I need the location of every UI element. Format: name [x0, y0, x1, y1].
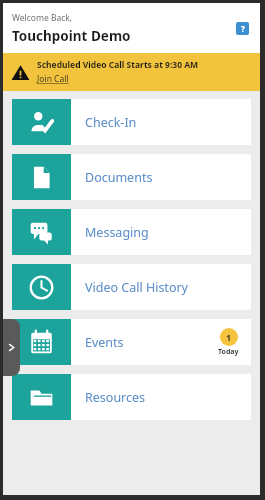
staticText: Join Call: [37, 73, 69, 85]
button[interactable]: Help: [236, 22, 249, 35]
staticText: 1: [226, 331, 232, 343]
button[interactable]: Open side menu: [3, 319, 20, 376]
button[interactable]: Events: [12, 319, 251, 365]
staticText: Scheduled Video Call Starts at 9:30 AM: [37, 59, 199, 71]
staticText: Events: [85, 334, 124, 351]
button[interactable]: Messaging: [12, 209, 251, 255]
staticText: Messaging: [85, 224, 149, 241]
staticText: Documents: [85, 169, 153, 186]
staticText: ?: [241, 23, 245, 34]
button[interactable]: Documents: [12, 154, 251, 200]
staticText: Check-In: [85, 114, 137, 131]
staticText: Touchpoint Demo: [12, 27, 131, 45]
staticText: Video Call History: [85, 279, 188, 296]
button[interactable]: Video Call History: [12, 264, 251, 310]
button[interactable]: Check-In: [12, 99, 251, 145]
staticText: Welcome Back,: [12, 12, 73, 24]
button[interactable]: Scheduled Video Call Starts at 9:30 AM: [3, 53, 260, 91]
button[interactable]: Join Call: [37, 73, 69, 85]
button[interactable]: Resources: [12, 374, 251, 420]
staticText: Today: [218, 347, 239, 357]
staticText: Resources: [85, 389, 146, 406]
